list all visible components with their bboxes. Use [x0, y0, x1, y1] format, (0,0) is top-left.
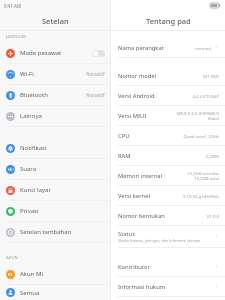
button[interactable]: Wi-Fi	[0, 64, 110, 85]
button[interactable]: Kontributor	[111, 257, 225, 277]
staticText: JARINGAN	[6, 34, 27, 40]
button[interactable]: Setelan tambahan	[0, 222, 110, 243]
staticText: Setelan tambahan	[20, 228, 105, 236]
staticText: RAM	[118, 152, 131, 160]
staticText: Bluetooth	[20, 91, 86, 99]
staticText: Privasi	[20, 207, 105, 215]
staticText: memod	[195, 45, 211, 51]
staticText: Kontributor	[118, 263, 150, 271]
staticText: Nomor bentukan	[118, 212, 165, 220]
staticText: Mode pesawat	[20, 49, 92, 57]
staticText: Quad-core1,2GHz	[183, 133, 219, 139]
button[interactable]: Suara	[0, 159, 110, 180]
staticText: CPU	[118, 132, 130, 140]
staticText: 2,0000	[205, 153, 219, 159]
staticText: Semua	[20, 289, 105, 297]
button[interactable]: Versi Android	[111, 86, 225, 106]
staticText: MIUI 8.5.0.0(KFMBL)I Stabil	[176, 110, 219, 121]
button[interactable]: RAM	[111, 146, 225, 166]
button[interactable]: Memori internal	[111, 166, 225, 186]
staticText: AKUN	[6, 255, 18, 261]
staticText: Versi Android	[118, 92, 155, 100]
button[interactable]: Nomor model	[111, 66, 225, 86]
staticText: M1 PAD	[203, 73, 219, 79]
staticText: Wi-Fi	[20, 70, 86, 78]
button[interactable]: Lainnya	[0, 106, 110, 127]
staticText: 4.4.4 KTU84P	[192, 93, 219, 99]
staticText: Versi MIUI	[118, 112, 147, 120]
staticText: Lainnya	[20, 112, 105, 120]
staticText: Nonaktif	[86, 71, 105, 77]
staticText: 3.10.24-g54b90eb	[182, 193, 219, 199]
staticText: V1.0.8	[206, 213, 219, 219]
staticText: Status baterai, jaringan, dan informasi …	[118, 238, 201, 243]
staticText: Nonaktif	[86, 92, 105, 98]
button[interactable]: Semua	[0, 285, 110, 300]
staticText: Suara	[20, 165, 105, 173]
button[interactable]: Bluetooth	[0, 85, 110, 106]
staticText: Notifikasi	[20, 144, 105, 152]
staticText: Status	[118, 230, 135, 238]
staticText: Tentang pad	[146, 16, 191, 26]
staticText: 13,3GB tersedia 16,0GB total	[187, 170, 219, 181]
button[interactable]: Nama perangkat	[111, 38, 225, 58]
button[interactable]: Kunci layar	[0, 180, 110, 201]
staticText: Setelan	[42, 16, 69, 26]
staticText: Nomor model	[118, 72, 156, 80]
staticText: Informasi hukum	[118, 283, 166, 291]
button[interactable]: Privasi	[0, 201, 110, 222]
button[interactable]: Versi MIUI	[111, 106, 225, 126]
button[interactable]: Informasi hukum	[111, 277, 225, 297]
staticText: Memori internal	[118, 172, 163, 180]
button[interactable]: Akun Mi	[0, 264, 110, 285]
other: Battery	[210, 3, 220, 8]
button[interactable]: CPU	[111, 126, 225, 146]
button[interactable]: Nomor bentukan	[111, 206, 225, 226]
button[interactable]: Mode pesawat	[0, 43, 110, 64]
button[interactable]: Status	[111, 226, 225, 248]
button[interactable]: Versi kernel	[111, 186, 225, 206]
staticText: Versi kernel	[118, 192, 150, 200]
button[interactable]: Notifikasi	[0, 138, 110, 159]
staticText: Akun Mi	[20, 270, 105, 278]
staticText: Nama perangkat	[118, 44, 164, 52]
staticText: Kunci layar	[20, 186, 105, 194]
staticText: 9:41 AM	[4, 3, 22, 9]
